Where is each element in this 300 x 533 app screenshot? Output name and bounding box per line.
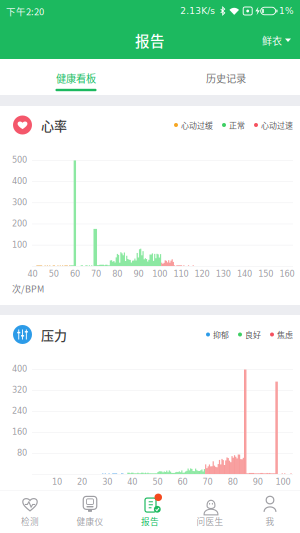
staticText: 正常 <box>229 119 245 131</box>
staticText: 2.13K/s <box>180 6 215 16</box>
staticText: 140 <box>237 269 252 279</box>
staticText: 120 <box>195 269 210 279</box>
staticText: 心率 <box>41 116 67 134</box>
staticText: 下午2:20 <box>6 4 44 18</box>
staticText: 10 <box>52 477 62 487</box>
staticText: 80 <box>112 269 122 279</box>
button[interactable]: 我 <box>240 491 300 533</box>
staticText: 健康看板 <box>56 71 96 85</box>
staticText: 110 <box>173 269 188 279</box>
staticText: 300 <box>12 198 27 207</box>
staticText: 问医生 <box>196 515 223 528</box>
button[interactable]: 报告 <box>120 491 180 533</box>
button[interactable]: 健康看板 <box>0 59 150 95</box>
staticText: 70 <box>91 269 101 279</box>
staticText: 1% <box>279 6 294 16</box>
staticText: 90 <box>133 269 143 279</box>
button[interactable]: 健康仪 <box>60 491 120 533</box>
staticText: 20 <box>77 477 87 487</box>
staticText: 90 <box>253 477 263 487</box>
staticText: 历史记录 <box>206 71 246 85</box>
staticText: 200 <box>12 219 27 228</box>
staticText: 60 <box>70 269 80 279</box>
staticText: 70 <box>203 477 213 487</box>
staticText: 80 <box>17 448 27 458</box>
staticText: 40 <box>127 477 137 487</box>
staticText: 160 <box>279 269 294 279</box>
staticText: 500 <box>12 155 27 165</box>
staticText: 240 <box>12 406 27 416</box>
button[interactable]: 检测 <box>0 491 60 533</box>
staticText: 130 <box>216 269 231 279</box>
staticText: 400 <box>12 364 27 374</box>
staticText: 抑郁 <box>213 329 229 340</box>
staticText: 100 <box>275 477 290 487</box>
staticText: 160 <box>12 427 27 437</box>
staticText: 检测 <box>21 515 39 528</box>
staticText: 100 <box>12 240 27 249</box>
staticText: 30 <box>102 477 112 487</box>
staticText: 焦虑 <box>277 329 293 340</box>
staticText: 150 <box>258 269 273 279</box>
staticText: 压力 <box>41 325 67 344</box>
staticText: 60 <box>177 477 187 487</box>
staticText: 次/BPM <box>12 282 44 295</box>
staticText: 鲜衣 <box>262 33 282 48</box>
staticText: 报告 <box>135 30 165 51</box>
staticText: 40 <box>27 269 37 279</box>
staticText: 100 <box>152 269 167 279</box>
staticText: 我 <box>265 515 274 528</box>
staticText: 心动过缓 <box>181 119 213 131</box>
staticText: 良好 <box>245 329 261 340</box>
button[interactable]: 鲜衣 <box>253 25 300 55</box>
staticText: 80 <box>228 477 238 487</box>
staticText: 50 <box>49 269 59 279</box>
staticText: 320 <box>12 385 27 395</box>
staticText: 心动过速 <box>261 119 293 131</box>
staticText: 400 <box>12 176 27 186</box>
staticText: 50 <box>152 477 162 487</box>
staticText: 健康仪 <box>76 515 103 528</box>
button[interactable]: 历史记录 <box>150 59 300 95</box>
button[interactable]: 问医生 <box>180 491 240 533</box>
staticText: 报告 <box>141 515 159 528</box>
